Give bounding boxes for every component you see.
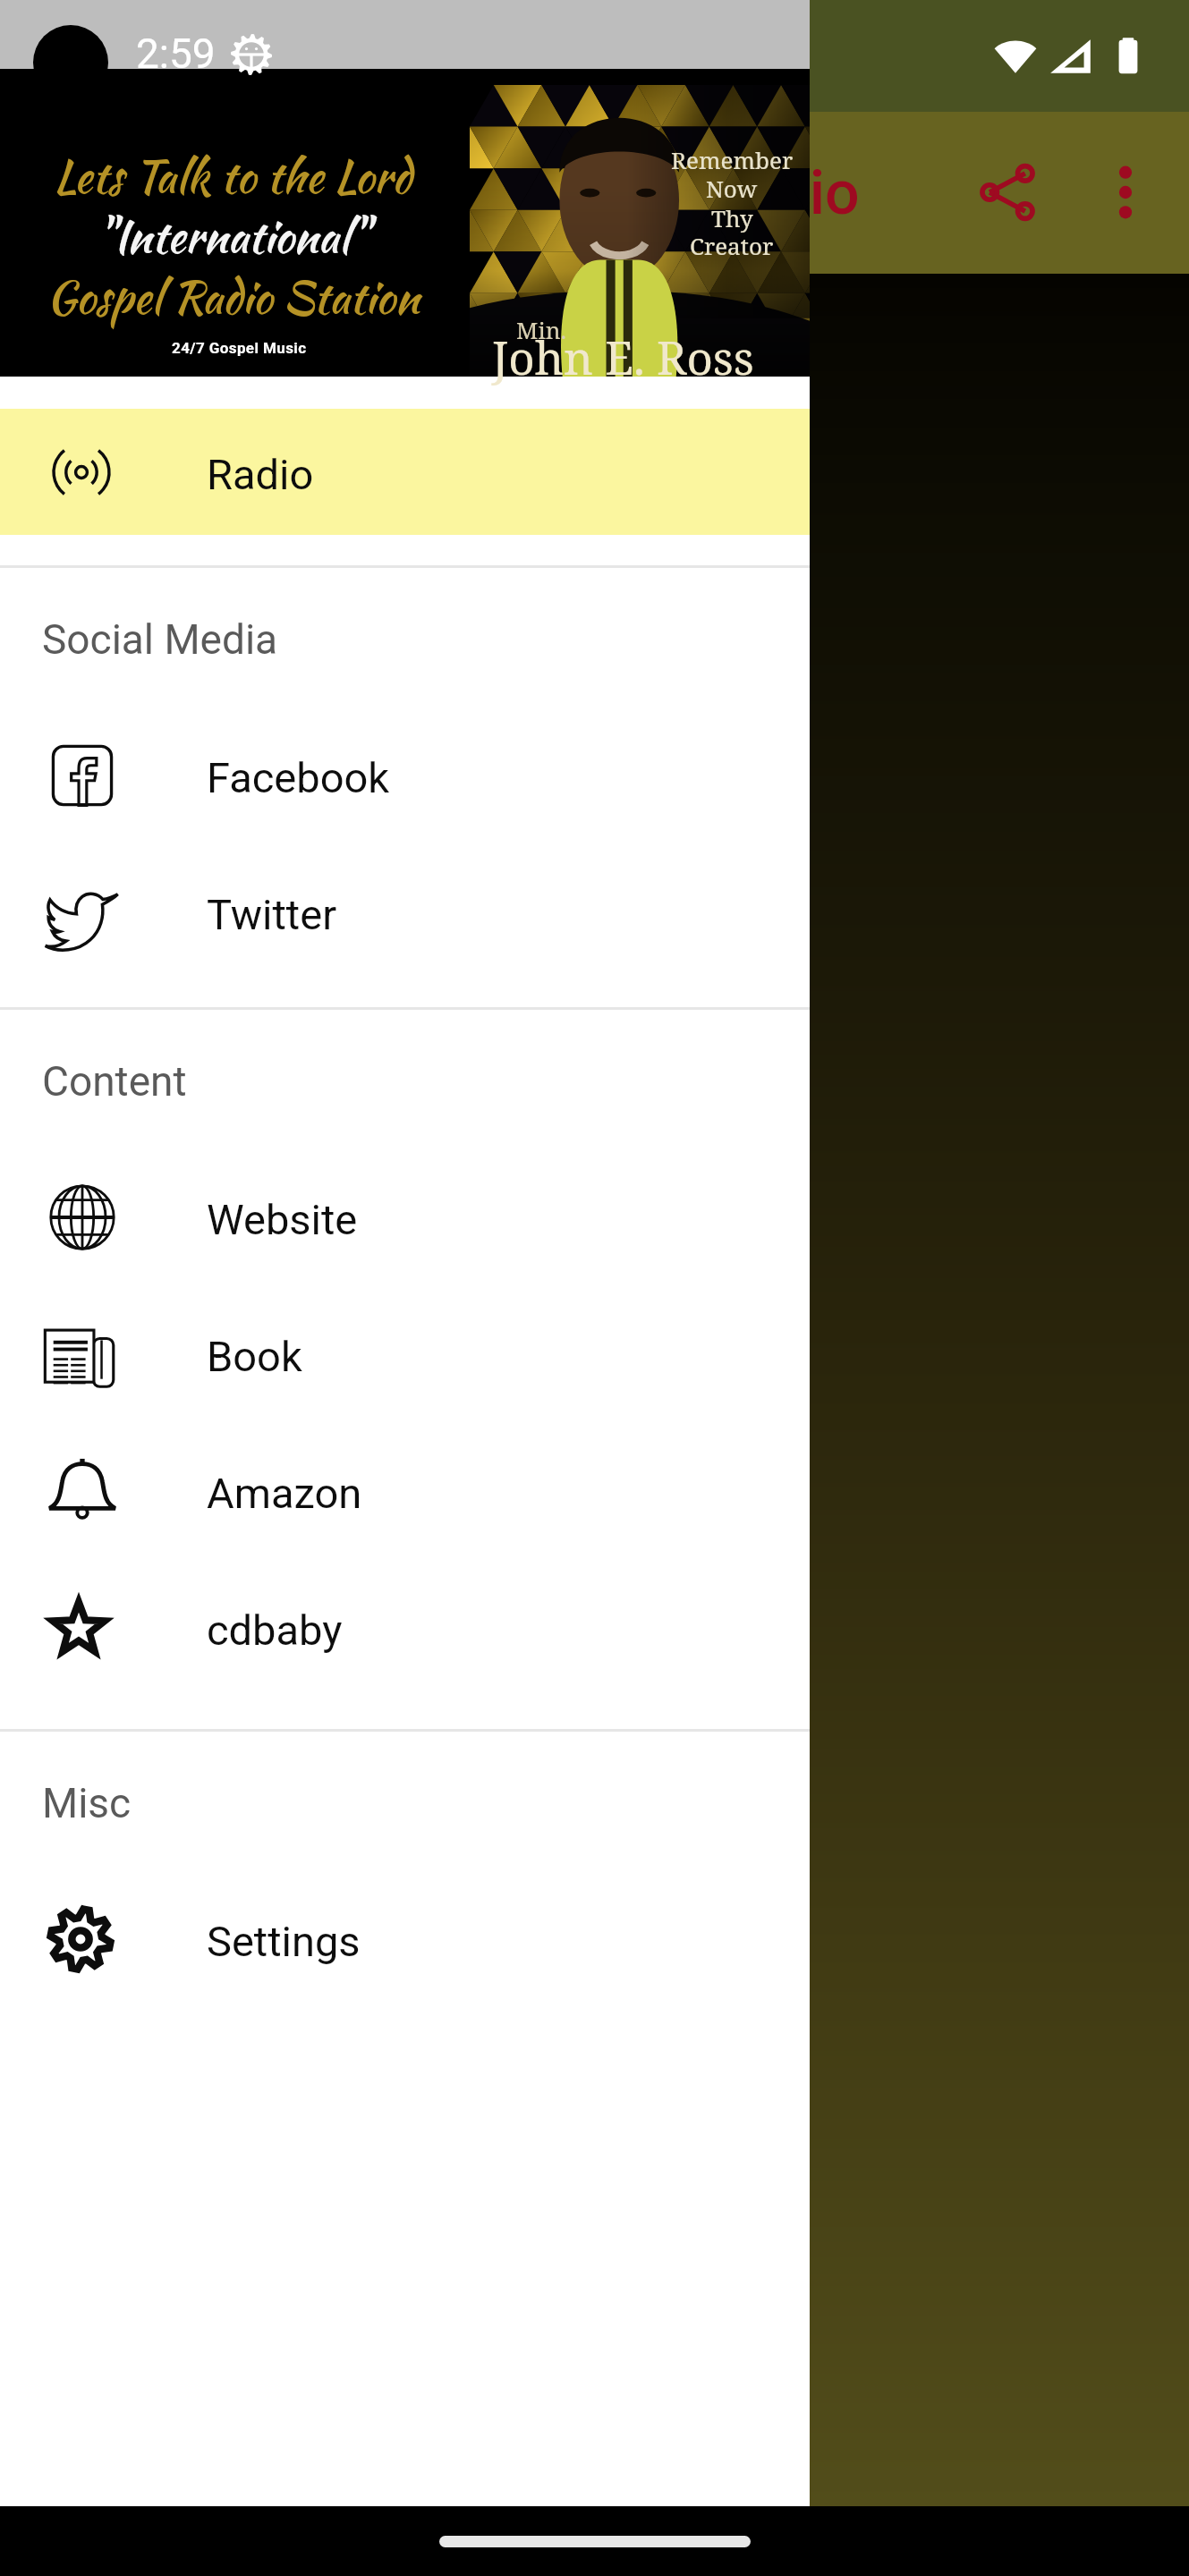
staticText: Amazon	[207, 1469, 362, 1518]
button[interactable]: cdbaby	[0, 1559, 810, 1696]
staticText: Min.	[516, 314, 566, 345]
staticText: Misc	[42, 1779, 132, 1827]
staticText: Radio	[704, 157, 860, 229]
staticText: Radio	[207, 450, 314, 499]
staticText: Lets Talk to the Lord	[54, 144, 412, 209]
button[interactable]: Website	[0, 1148, 810, 1285]
staticText: Website	[207, 1195, 358, 1244]
staticText: 2:59	[136, 30, 216, 78]
button[interactable]: Amazon	[0, 1422, 810, 1559]
staticText: Gospel Radio Station	[47, 265, 420, 330]
staticText: cdbaby	[207, 1606, 343, 1655]
staticText: "International"	[98, 204, 369, 269]
staticText: Facebook	[207, 753, 390, 802]
staticText: Remember	[671, 144, 794, 175]
button[interactable]: Facebook	[0, 707, 810, 843]
staticText: Thy	[711, 202, 753, 233]
button[interactable]: More options	[1061, 128, 1189, 257]
staticText: Book	[207, 1332, 302, 1381]
staticText: Social Media	[42, 615, 278, 664]
staticText: Creator	[690, 230, 774, 261]
button[interactable]: Book	[0, 1285, 810, 1422]
button[interactable]: Twitter	[0, 843, 810, 980]
staticText: Now	[706, 173, 758, 204]
staticText: 24/7 Gospel Music	[172, 339, 307, 357]
staticText: Content	[42, 1057, 187, 1106]
button[interactable]: Radio	[0, 409, 810, 535]
button[interactable]: Settings	[0, 1870, 810, 2007]
button[interactable]: Share	[943, 128, 1072, 257]
staticText: Settings	[207, 1917, 361, 1966]
staticText: John E. Ross	[492, 326, 754, 387]
staticText: Twitter	[207, 890, 337, 939]
